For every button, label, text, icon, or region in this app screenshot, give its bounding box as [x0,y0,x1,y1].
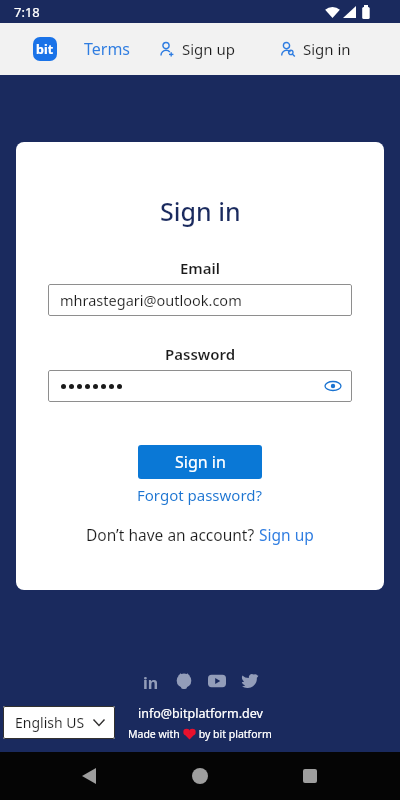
staticText: 7:18 [14,3,40,21]
staticText: Terms [84,38,131,60]
button[interactable]: bit [33,37,57,61]
button[interactable]: mhrastegari@outlook.com [48,284,352,316]
staticText: Sign in [160,194,241,228]
button[interactable] [175,672,193,690]
button[interactable] [82,768,96,784]
staticText: Made with [128,727,183,741]
staticText: Password [165,344,236,364]
button[interactable] [192,768,208,784]
button[interactable]: Terms [84,38,131,60]
staticText: bit [36,41,54,58]
button[interactable]: Sign up [160,39,235,59]
button[interactable]: Forgot password? [137,485,263,505]
button[interactable]: English US [3,706,115,739]
staticText: Forgot password? [137,485,263,505]
staticText: mhrastegari@outlook.com [60,290,242,310]
button[interactable] [48,370,352,402]
staticText: Don’t have an account? [86,524,259,545]
staticText: Email [180,258,221,278]
staticText: Sign in [303,39,351,59]
button[interactable] [208,672,226,690]
staticText: in [143,672,159,690]
staticText: Sign up [182,39,235,59]
button[interactable] [303,769,317,783]
staticText: English US [15,713,85,732]
button[interactable]: Sign in [281,39,351,59]
button[interactable]: Sign in [138,445,262,479]
button[interactable] [241,672,259,690]
staticText: Sign up [259,524,314,545]
button[interactable]: Sign up [259,524,314,545]
staticText: Sign in [175,451,226,473]
button[interactable]: info@bitplatform.dev [138,705,263,722]
staticText: by bit platform [196,727,272,741]
button[interactable]: in [142,672,160,690]
